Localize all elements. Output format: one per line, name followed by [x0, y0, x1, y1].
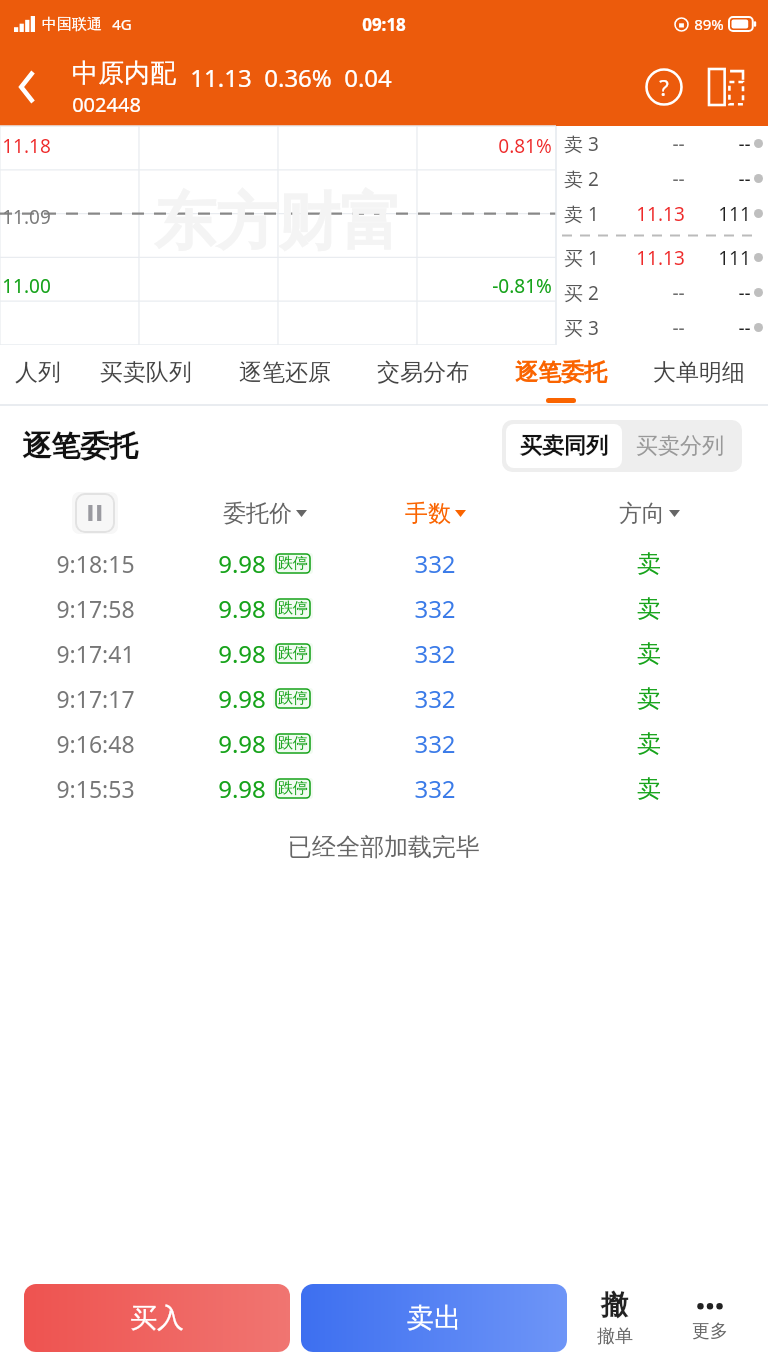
staticText: 89% [694, 14, 724, 34]
staticText: ? [659, 72, 669, 102]
button[interactable]: 买卖队列 [76, 345, 215, 407]
button[interactable]: 委托价 [190, 485, 340, 541]
button[interactable]: 逐笔还原 [215, 345, 354, 407]
staticText: 逐笔委托 [22, 428, 138, 465]
button[interactable]: 人列 [0, 345, 76, 407]
button[interactable]: Help [640, 63, 688, 111]
staticText: 跌停 [278, 599, 308, 618]
staticText: 11.18 [2, 133, 51, 159]
staticText: 0.04 [344, 61, 392, 94]
button[interactable]: 买 1 [556, 240, 768, 275]
staticText: 11.13 [636, 201, 685, 227]
staticText: -- [738, 315, 751, 341]
button[interactable]: 交易分布 [354, 345, 492, 407]
staticText: 332 [414, 637, 456, 670]
staticText: 跌停 [278, 689, 308, 708]
button[interactable]: 卖 3 [556, 126, 768, 161]
staticText: 撤 [601, 1288, 628, 1322]
staticText: 9.98 [218, 772, 266, 805]
staticText: 9:17:58 [56, 593, 135, 624]
button[interactable]: 9:17:41 [0, 631, 768, 676]
staticText: 9.98 [218, 637, 266, 670]
staticText: 332 [414, 592, 456, 625]
button[interactable]: 买卖分列 [622, 424, 738, 468]
staticText: 9:18:15 [56, 548, 135, 579]
button[interactable]: 大单明细 [630, 345, 768, 407]
button[interactable]: 卖出 [301, 1284, 567, 1352]
staticText: 跌停 [278, 734, 308, 753]
staticText: 111 [718, 201, 751, 227]
staticText: 卖 [637, 549, 661, 579]
button[interactable]: 9:17:58 [0, 586, 768, 631]
staticText: 委托价 [223, 499, 292, 528]
button[interactable]: 方向 [530, 485, 768, 541]
staticText: 中原内配 [72, 57, 176, 90]
staticText: 11.13 [190, 61, 252, 94]
button[interactable]: Pause [72, 492, 118, 534]
button[interactable]: 9:15:53 [0, 766, 768, 811]
staticText: 逐笔委托 [515, 358, 607, 387]
staticText: 卖 1 [564, 201, 599, 227]
staticText: 卖出 [407, 1301, 461, 1335]
staticText: -- [672, 131, 685, 157]
staticText: 卖 [637, 684, 661, 714]
staticText: 买卖同列 [520, 432, 608, 460]
button[interactable]: 逐笔委托 [492, 345, 630, 407]
staticText: 跌停 [278, 779, 308, 798]
button[interactable]: Split screen [702, 63, 750, 111]
staticText: -- [672, 280, 685, 306]
button[interactable]: 买 2 [556, 275, 768, 310]
staticText: 交易分布 [377, 358, 469, 387]
staticText: 买 2 [564, 280, 599, 306]
staticText: 9:17:17 [56, 683, 135, 714]
staticText: 跌停 [278, 644, 308, 663]
staticText: -- [738, 280, 751, 306]
staticText: 111 [718, 245, 751, 271]
staticText: 332 [414, 547, 456, 580]
button[interactable]: 买卖同列 [506, 424, 622, 468]
staticText: 9.98 [218, 547, 266, 580]
button[interactable]: 9:17:17 [0, 676, 768, 721]
staticText: 方向 [619, 499, 665, 528]
staticText: 332 [414, 727, 456, 760]
button[interactable]: 9:18:15 [0, 541, 768, 586]
staticText: 大单明细 [653, 358, 745, 387]
button[interactable]: 9:16:48 [0, 721, 768, 766]
staticText: 卖 [637, 594, 661, 624]
staticText: 11.00 [2, 273, 51, 299]
staticText: 买入 [130, 1301, 184, 1335]
staticText: 更多 [692, 1320, 728, 1343]
staticText: 跌停 [278, 554, 308, 573]
staticText: -0.81% [492, 273, 552, 299]
staticText: 东方财富 [154, 183, 402, 261]
staticText: 11.09 [2, 204, 51, 230]
staticText: 9.98 [218, 682, 266, 715]
staticText: 卖 [637, 639, 661, 669]
staticText: 9.98 [218, 592, 266, 625]
button[interactable]: Back [0, 59, 56, 115]
button[interactable]: 买入 [24, 1284, 290, 1352]
staticText: 332 [414, 682, 456, 715]
staticText: -- [738, 166, 751, 192]
staticText: 逐笔还原 [239, 358, 331, 387]
button[interactable]: 撤 [567, 1270, 662, 1366]
button[interactable]: 手数 [340, 485, 530, 541]
staticText: 9:16:48 [56, 728, 135, 759]
button[interactable]: 卖 2 [556, 161, 768, 196]
staticText: 332 [414, 772, 456, 805]
staticText: 人列 [15, 358, 61, 387]
staticText: 9:15:53 [56, 773, 135, 804]
staticText: 09:18 [362, 13, 406, 36]
button[interactable]: 买 3 [556, 310, 768, 345]
staticText: 卖 2 [564, 166, 599, 192]
staticText: 撤单 [597, 1325, 633, 1348]
staticText: 9.98 [218, 727, 266, 760]
staticText: 9:17:41 [56, 638, 135, 669]
staticText: 卖 [637, 729, 661, 759]
staticText: -- [672, 315, 685, 341]
button[interactable]: 卖 1 [556, 196, 768, 231]
staticText: 卖 3 [564, 131, 599, 157]
staticText: 卖 [637, 774, 661, 804]
staticText: 买卖队列 [100, 358, 192, 387]
button[interactable]: 更多 [662, 1270, 758, 1366]
